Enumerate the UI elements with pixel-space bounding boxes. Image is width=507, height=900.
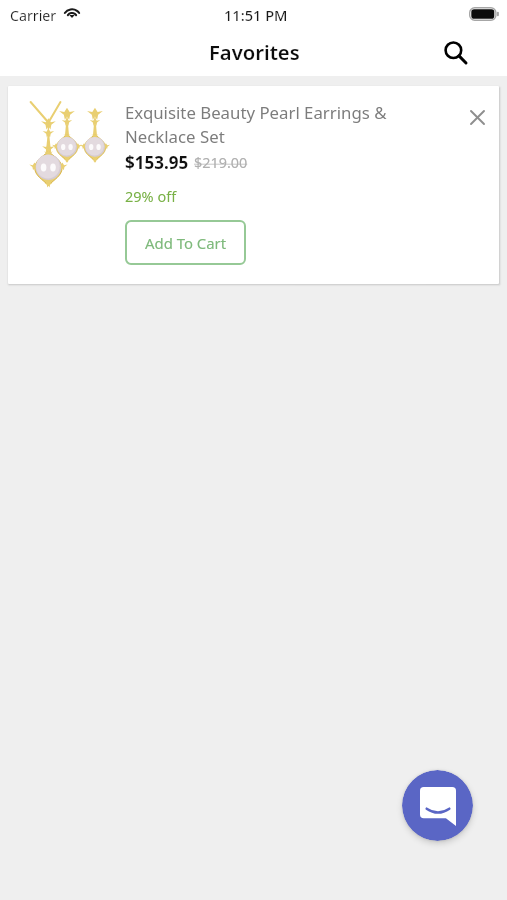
staticText: Favorites: [209, 38, 300, 66]
button[interactable]: Remove from favorites: [457, 97, 497, 137]
button[interactable]: Add To Cart: [125, 220, 246, 265]
staticText: $153.95: [125, 151, 189, 174]
staticText: 29% off: [125, 186, 177, 206]
button[interactable]: Search: [433, 30, 479, 76]
staticText: Exquisite Beauty Pearl Earrings & Neckla…: [125, 101, 387, 148]
staticText: Add To Cart: [145, 233, 227, 253]
button[interactable]: Exquisite Beauty Pearl Earrings & Neckla…: [8, 86, 499, 284]
button[interactable]: Open chat: [402, 770, 473, 841]
staticText: 11:51 PM: [224, 5, 288, 25]
staticText: Carrier: [10, 6, 57, 25]
staticText: $219.00: [194, 153, 248, 173]
